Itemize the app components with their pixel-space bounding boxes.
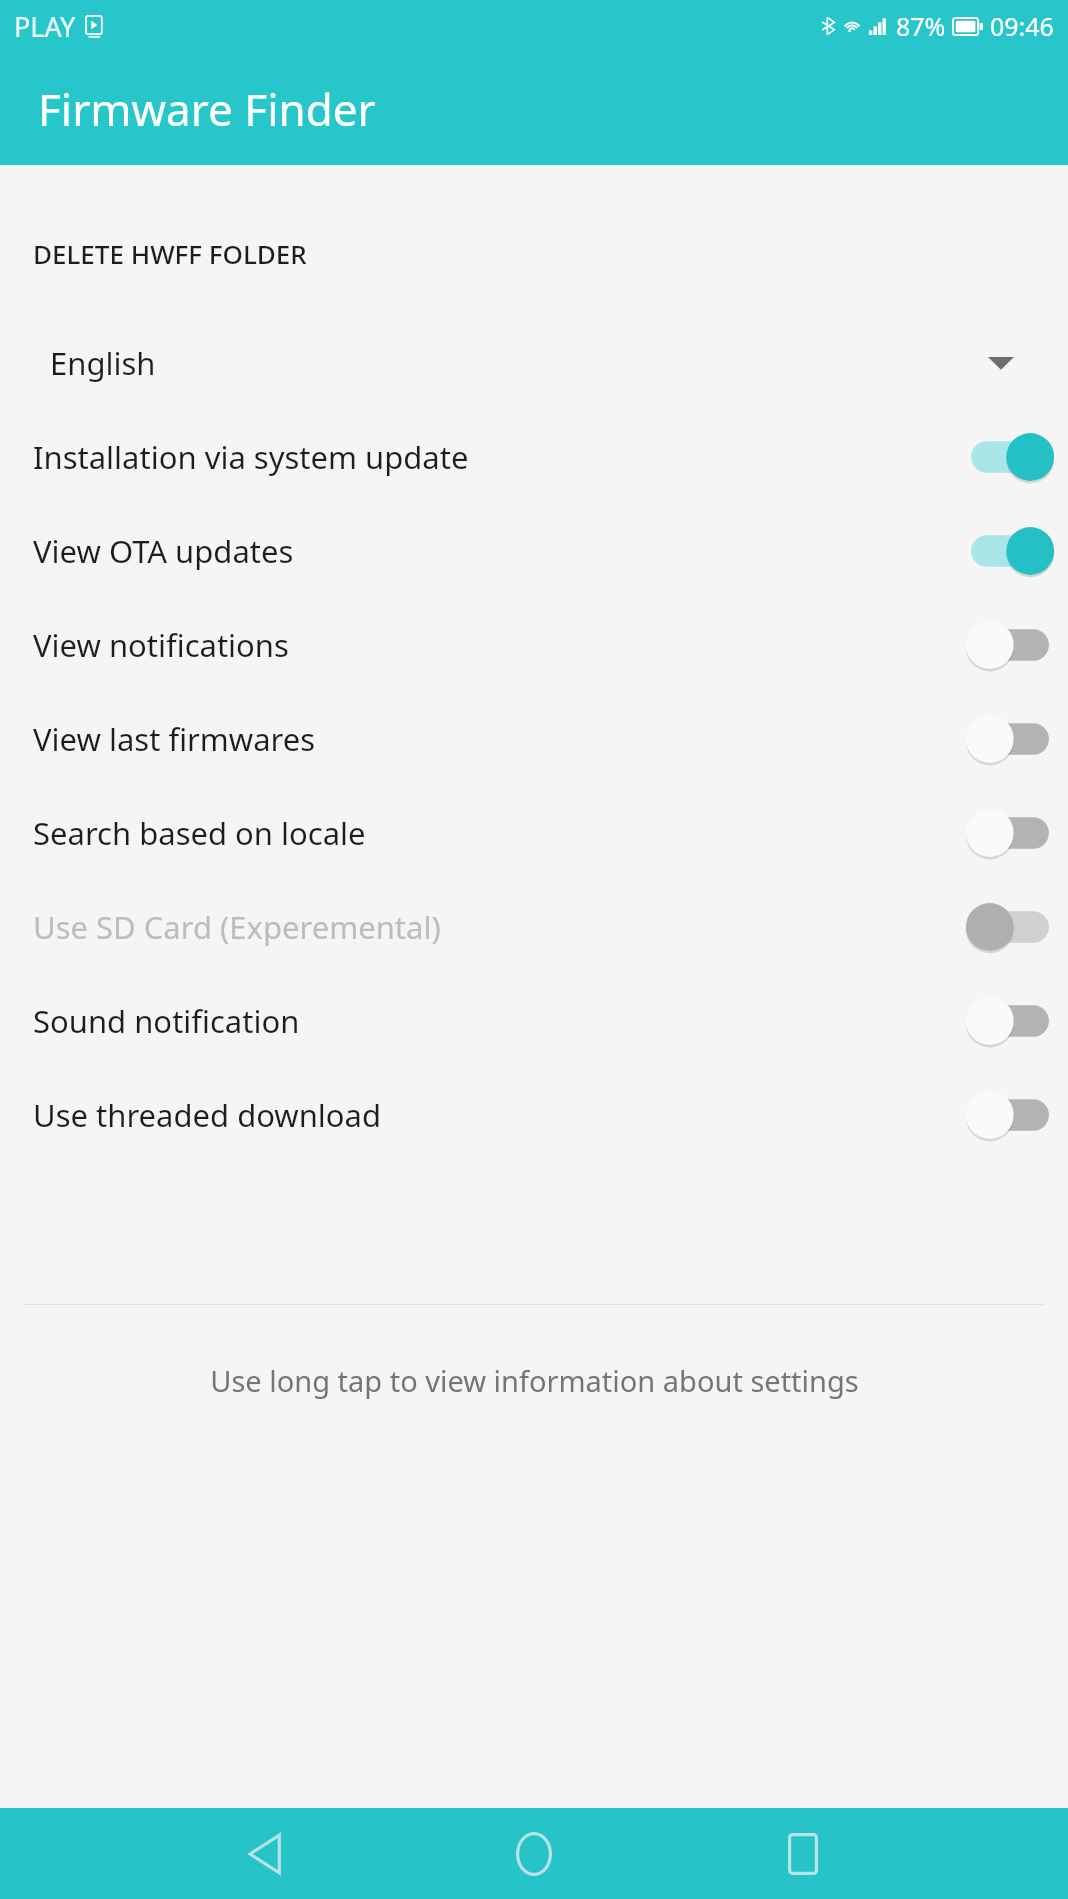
button[interactable]: Off <box>968 617 1052 673</box>
button[interactable]: Off <box>968 1087 1052 1143</box>
button[interactable]: Off <box>968 993 1052 1049</box>
staticText: Installation via system update <box>33 436 469 478</box>
button[interactable]: On <box>968 429 1052 485</box>
button[interactable]: English <box>0 316 1068 410</box>
staticText: Firmware Finder <box>38 79 376 139</box>
staticText: View OTA updates <box>33 530 294 572</box>
button[interactable]: Off <box>968 805 1052 861</box>
staticText: 87% <box>896 9 946 43</box>
button[interactable]: Off <box>968 711 1052 767</box>
staticText: Use threaded download <box>33 1094 382 1136</box>
staticText: PLAY <box>14 8 76 45</box>
button[interactable]: Off <box>968 899 1052 955</box>
button[interactable]: View last firmwares <box>0 692 1068 786</box>
button[interactable]: DELETE HWFF FOLDER <box>0 222 1068 284</box>
button[interactable]: Home <box>486 1808 582 1899</box>
staticText: Search based on locale <box>33 812 366 854</box>
staticText: Use long tap to view information about s… <box>210 1361 859 1400</box>
staticText: Use SD Card (Experemental) <box>33 906 441 948</box>
button[interactable]: View notifications <box>0 598 1068 692</box>
button[interactable]: Recent apps <box>755 1808 851 1899</box>
staticText: View notifications <box>33 624 289 666</box>
staticText: View last firmwares <box>33 718 316 760</box>
button[interactable]: On <box>968 523 1052 579</box>
button[interactable]: Search based on locale <box>0 786 1068 880</box>
staticText: 09:46 <box>990 9 1054 43</box>
button[interactable]: View OTA updates <box>0 504 1068 598</box>
button[interactable]: Sound notification <box>0 974 1068 1068</box>
button[interactable]: Back <box>217 1808 313 1899</box>
button[interactable]: Use SD Card (Experemental) <box>0 880 1068 974</box>
button[interactable]: Installation via system update <box>0 410 1068 504</box>
staticText: Sound notification <box>33 1000 300 1042</box>
staticText: DELETE HWFF FOLDER <box>33 236 307 271</box>
staticText: English <box>50 342 156 384</box>
button[interactable]: Use threaded download <box>0 1068 1068 1162</box>
